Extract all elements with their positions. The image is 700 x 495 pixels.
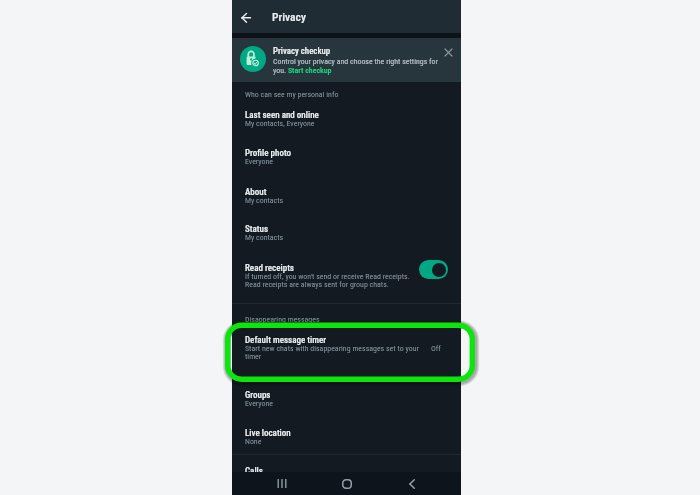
button[interactable]: Read receipts toggle [419, 260, 448, 279]
button[interactable]: Home [336, 472, 358, 495]
button[interactable]: Groups [232, 390, 461, 428]
staticText: None [245, 437, 262, 446]
button[interactable]: About [232, 187, 461, 225]
staticText: My contacts [245, 233, 284, 242]
button[interactable]: Default message timer [232, 335, 461, 379]
staticText: Off [431, 344, 441, 353]
button[interactable]: Back [233, 5, 259, 31]
staticText: Everyone [245, 399, 274, 408]
staticText: About [245, 187, 267, 198]
button[interactable]: Privacy checkup [232, 38, 461, 82]
button[interactable]: Recent apps [271, 472, 293, 495]
staticText: Profile photo [245, 148, 291, 159]
staticText: My contacts, Everyone [245, 119, 315, 128]
staticText: Read receipts [245, 263, 294, 274]
button[interactable]: Read receipts [232, 263, 461, 307]
staticText: Groups [245, 390, 271, 401]
staticText: My contacts [245, 196, 284, 205]
staticText: Disappearing messages [245, 315, 320, 324]
button[interactable]: Profile photo [232, 148, 461, 186]
staticText: Start new chats with disappearing messag… [245, 344, 419, 353]
staticText: Privacy [272, 10, 306, 24]
staticText: Who can see my personal info [245, 90, 339, 99]
staticText: Status [245, 224, 269, 235]
staticText: Last seen and online [245, 110, 319, 121]
button[interactable]: Back [401, 472, 423, 495]
staticText: If turned off, you won't send or receive… [245, 272, 410, 281]
staticText: Default message timer [245, 335, 327, 346]
staticText: timer [245, 352, 262, 361]
staticText: Live location [245, 428, 291, 439]
button[interactable]: Dismiss [440, 44, 456, 60]
button[interactable]: Live location [232, 428, 461, 466]
staticText: Everyone [245, 157, 274, 166]
button[interactable]: Last seen and online [232, 110, 461, 148]
staticText: Calls [245, 466, 263, 477]
button[interactable]: Status [232, 224, 461, 262]
staticText: Privacy checkup [273, 46, 331, 56]
button[interactable]: Calls [232, 466, 461, 495]
staticText: Control your privacy and choose the righ… [273, 57, 441, 75]
staticText: Read receipts are always sent for group … [245, 280, 389, 289]
